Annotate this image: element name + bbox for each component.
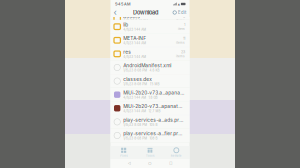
staticText: Download [133, 9, 158, 16]
button[interactable]: Back [113, 8, 119, 17]
staticText: 11 [183, 36, 185, 41]
button[interactable]: AndroidManifest.xml [110, 61, 189, 74]
button[interactable]: play-services-a...ads.properties [110, 115, 189, 129]
staticText: 7.5 MB [149, 82, 159, 86]
button[interactable]: Remote [163, 146, 189, 159]
staticText: □ [169, 161, 172, 166]
button[interactable]: play-services-a...fier.properties [110, 129, 189, 142]
staticText: items [176, 41, 185, 44]
staticText: META-INF [123, 35, 146, 41]
staticText: 105 B [149, 123, 157, 127]
staticText: Edit [178, 10, 186, 15]
button[interactable]: MiUi-2b20-v73...apanathan.apk [110, 102, 189, 115]
staticText: classes.dex [123, 76, 152, 82]
staticText: 4/11/23 1:44 AM [123, 109, 146, 113]
staticText: 4/11/23 1:44 AM [123, 41, 146, 45]
button[interactable]: res [110, 47, 189, 61]
staticText: 5:45 AM [115, 2, 131, 6]
staticText: ‹ [113, 7, 116, 18]
button[interactable]: MiUi-2b20-v73.a...apanathan.rar [110, 88, 189, 102]
staticText: AndroidManifest.xml [123, 63, 171, 68]
staticText: play-services-a...ads.properties [123, 117, 184, 123]
staticText: 4/11/23 1:44 AM [123, 55, 146, 59]
button[interactable]: lib [110, 20, 189, 34]
button[interactable]: assets [110, 17, 189, 20]
staticText: 1/15/23 8:08 PM [123, 123, 147, 127]
staticText: 23 [181, 50, 185, 54]
staticText: 1.8 GB [148, 96, 157, 99]
staticText: items [176, 54, 185, 58]
staticText: play-services-a...fier.properties [123, 131, 184, 136]
button[interactable]: Tools [137, 146, 163, 159]
staticText: 4/11/23 1:44 AM [123, 96, 146, 99]
staticText: 1 [184, 23, 185, 27]
staticText: lib [123, 22, 128, 28]
button[interactable]: classes.dex [110, 74, 189, 88]
staticText: ◁ [128, 161, 131, 166]
staticText: res [123, 49, 131, 55]
button[interactable]: Search [171, 8, 178, 17]
button[interactable]: Edit [178, 8, 186, 17]
staticText: MiUi-2b20-v73.a...apanathan.rar [123, 90, 184, 96]
staticText: 4.6 KB [149, 69, 159, 72]
button[interactable]: META-INF [110, 34, 189, 47]
staticText: Tools [146, 154, 154, 157]
staticText: ○ [148, 161, 152, 166]
staticText: Remote [171, 154, 182, 157]
staticText: 4/11/23 1:44 AM [123, 28, 146, 31]
staticText: item [178, 27, 185, 31]
staticText: 4/18/23 5:45 PM [123, 19, 148, 23]
button[interactable]: Files [110, 146, 137, 159]
staticText: 1/15/23 8:08 PM [123, 137, 147, 140]
staticText: ▴ [178, 1, 180, 6]
staticText: items [176, 19, 185, 22]
staticText: 1/15/23 8:08 PM [123, 69, 147, 72]
staticText: Files [120, 154, 127, 157]
staticText: 108 B [149, 137, 157, 140]
staticText: 6 [183, 14, 185, 19]
staticText: assets [123, 13, 140, 19]
staticText: 1/15/23 8:08 PM [123, 82, 147, 86]
staticText: 12.7 MB [148, 109, 160, 113]
staticText: MiUi-2b20-v73...apanathan.apk [123, 103, 184, 109]
